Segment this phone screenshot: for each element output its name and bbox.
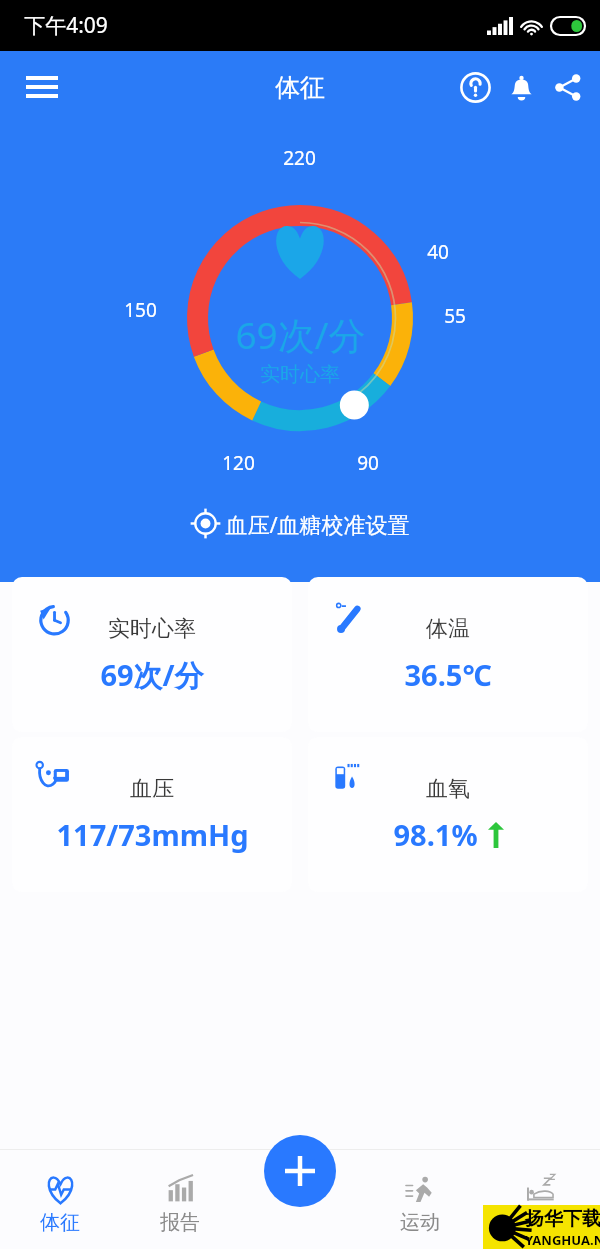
staticText: 睡眠 bbox=[520, 1210, 560, 1235]
staticText: 扬华下载 bbox=[525, 1207, 600, 1231]
button[interactable]: 睡眠 bbox=[480, 1171, 600, 1237]
staticText: 150 bbox=[124, 297, 157, 323]
button[interactable]: Heart rate history bbox=[12, 577, 292, 732]
button[interactable]: 运动 bbox=[360, 1171, 480, 1237]
button[interactable]: Share bbox=[544, 64, 590, 110]
button[interactable]: 血压/血糖校准设置 bbox=[0, 508, 600, 539]
staticText: 体征 bbox=[40, 1210, 80, 1235]
staticText: 血压/血糖校准设置 bbox=[225, 509, 410, 539]
staticText: 69次/分 bbox=[100, 655, 204, 695]
staticText: 69次/分 bbox=[235, 309, 366, 360]
staticText: 98.1% bbox=[393, 815, 478, 854]
staticText: 120 bbox=[222, 450, 255, 476]
button[interactable]: Blood oxygen bbox=[308, 737, 588, 892]
button[interactable]: Menu bbox=[16, 61, 68, 113]
button[interactable]: Temperature bbox=[308, 577, 588, 732]
button[interactable]: 体征 bbox=[0, 1171, 120, 1237]
staticText: 运动 bbox=[400, 1210, 440, 1235]
staticText: 实时心率 bbox=[260, 362, 340, 387]
staticText: YANGHUA.NET bbox=[525, 1231, 600, 1249]
staticText: 血氧 bbox=[426, 775, 470, 803]
staticText: 血压 bbox=[130, 775, 174, 803]
staticText: 40 bbox=[427, 239, 449, 265]
staticText: 36.5℃ bbox=[404, 655, 492, 694]
staticText: 实时心率 bbox=[108, 615, 196, 643]
staticText: 报告 bbox=[160, 1210, 200, 1235]
staticText: 55 bbox=[444, 303, 466, 329]
button[interactable]: Help bbox=[452, 64, 498, 110]
staticText: 90 bbox=[357, 450, 379, 476]
staticText: 体征 bbox=[275, 72, 325, 103]
button[interactable]: Add bbox=[264, 1135, 336, 1207]
button[interactable]: 报告 bbox=[120, 1171, 240, 1237]
staticText: 220 bbox=[283, 145, 316, 171]
button[interactable]: Notifications bbox=[498, 64, 544, 110]
staticText: 下午4:09 bbox=[24, 11, 108, 40]
button[interactable]: Blood pressure bbox=[12, 737, 292, 892]
staticText: 117/73mmHg bbox=[56, 815, 249, 854]
staticText: 体温 bbox=[426, 615, 470, 643]
